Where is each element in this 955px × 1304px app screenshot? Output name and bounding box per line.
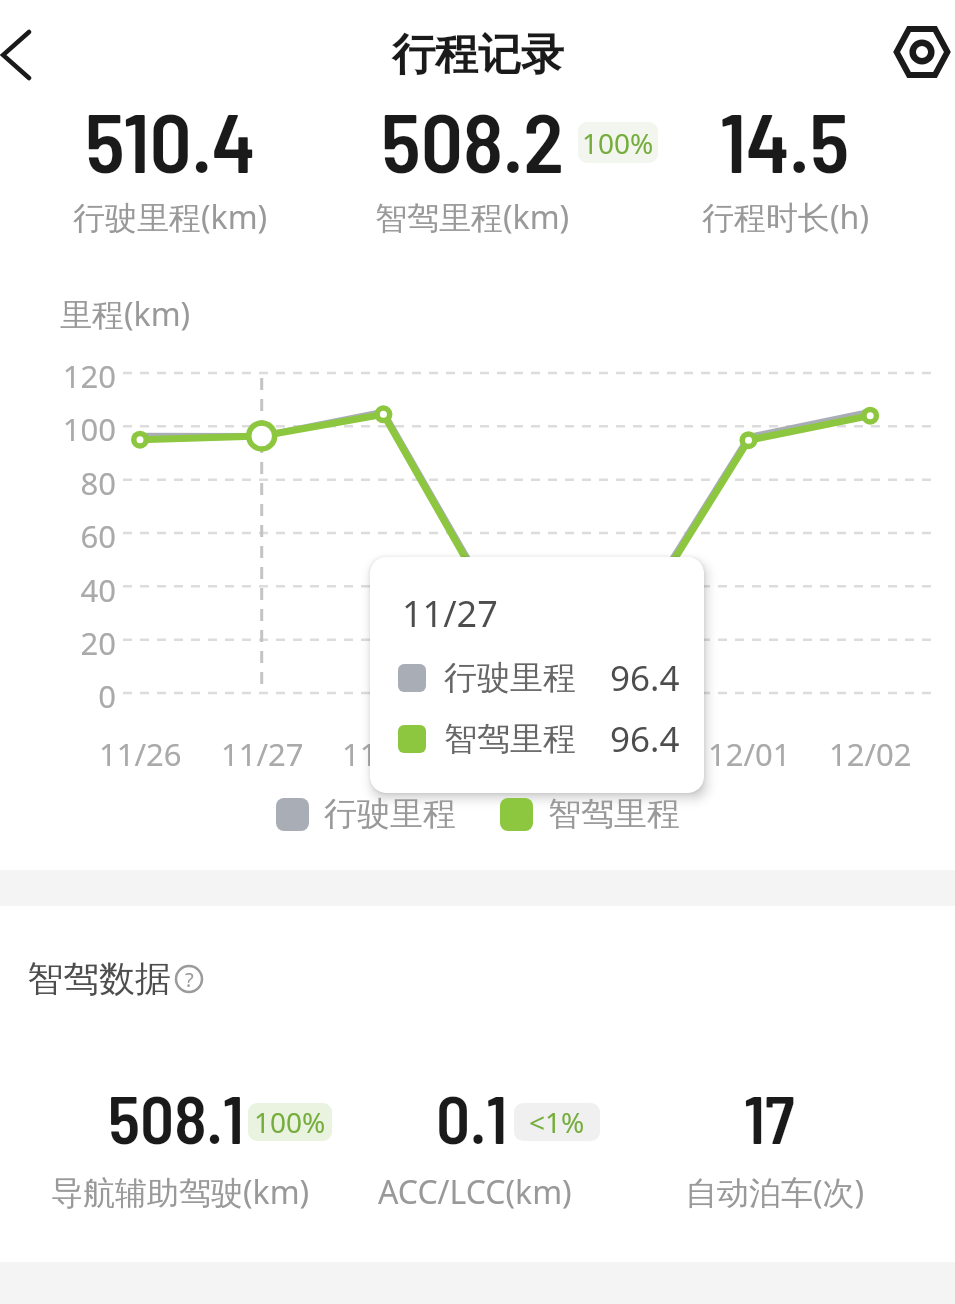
staticText: 12/02 <box>829 733 912 775</box>
staticText: 里程(km) <box>60 292 191 336</box>
staticText: 100% <box>254 1103 326 1141</box>
staticText: 智驾里程 <box>548 793 680 835</box>
staticText: 行驶里程 <box>444 657 576 699</box>
staticText: 导航辅助驾驶(km) <box>51 1170 310 1214</box>
button[interactable] <box>0 24 56 82</box>
staticText: 11/27 <box>402 589 498 638</box>
staticText: 11/30 <box>586 733 669 775</box>
staticText: ACC/LCC(km) <box>378 1170 572 1214</box>
staticText: 100 <box>40 408 116 450</box>
staticText: 11/28 <box>342 733 425 775</box>
staticText: 60 <box>40 515 116 557</box>
staticText: 508.2 <box>381 90 564 190</box>
staticText: 行驶里程(km) <box>73 195 268 239</box>
staticText: 行程时长(h) <box>702 195 869 239</box>
staticText: 行程记录 <box>392 28 564 82</box>
staticText: 510.4 <box>85 90 256 190</box>
staticText: 120 <box>40 355 116 397</box>
staticText: 508.1 <box>108 1077 244 1157</box>
staticText: 80 <box>40 462 116 504</box>
staticText: 11/29 <box>464 733 547 775</box>
staticText: 11/26 <box>99 733 182 775</box>
staticText: 100% <box>582 124 654 162</box>
staticText: 11/27 <box>221 733 304 775</box>
button[interactable]: 智驾数据 <box>27 956 204 1001</box>
staticText: ? <box>185 966 194 993</box>
staticText: 0.1 <box>436 1077 508 1157</box>
staticText: 20 <box>40 622 116 664</box>
staticText: 0 <box>40 675 116 717</box>
staticText: 智驾里程(km) <box>375 195 570 239</box>
staticText: 智驾里程 <box>444 718 576 760</box>
staticText: 17 <box>744 1077 795 1157</box>
staticText: 行驶里程 <box>324 793 456 835</box>
staticText: 14.5 <box>720 90 850 190</box>
staticText: 智驾数据 <box>27 956 171 1001</box>
button[interactable] <box>888 20 955 84</box>
staticText: 12/01 <box>708 733 791 775</box>
staticText: 96.4 <box>610 715 680 763</box>
staticText: <1% <box>529 1103 585 1141</box>
staticText: 自动泊车(次) <box>685 1170 865 1214</box>
staticText: 40 <box>40 569 116 611</box>
staticText: 96.4 <box>610 654 680 702</box>
